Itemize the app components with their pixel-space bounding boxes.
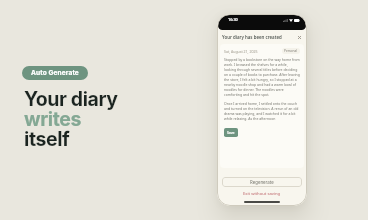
staticText: Once I arrived home, I settled onto the …	[224, 101, 300, 121]
staticText: Save	[227, 130, 235, 135]
button[interactable]: Save	[224, 128, 238, 137]
staticText: Your diary writes itself	[24, 87, 118, 151]
staticText: Auto Generate	[31, 69, 79, 77]
staticText: Stopped by a bookstore on the way home f…	[224, 57, 300, 97]
staticText: Sat, August 21, 2025	[224, 49, 258, 54]
staticText: Your diary has been created	[222, 34, 282, 40]
staticText: Exit without saving	[243, 191, 281, 197]
staticText: Personal	[284, 49, 298, 53]
button[interactable]: Exit without saving	[239, 190, 285, 198]
button[interactable]: Close	[295, 33, 303, 41]
button[interactable]: Regenerate	[222, 177, 302, 187]
staticText: Regenerate	[250, 179, 274, 185]
staticText: 16:30	[228, 17, 238, 22]
button[interactable]: Auto Generate	[22, 66, 88, 80]
